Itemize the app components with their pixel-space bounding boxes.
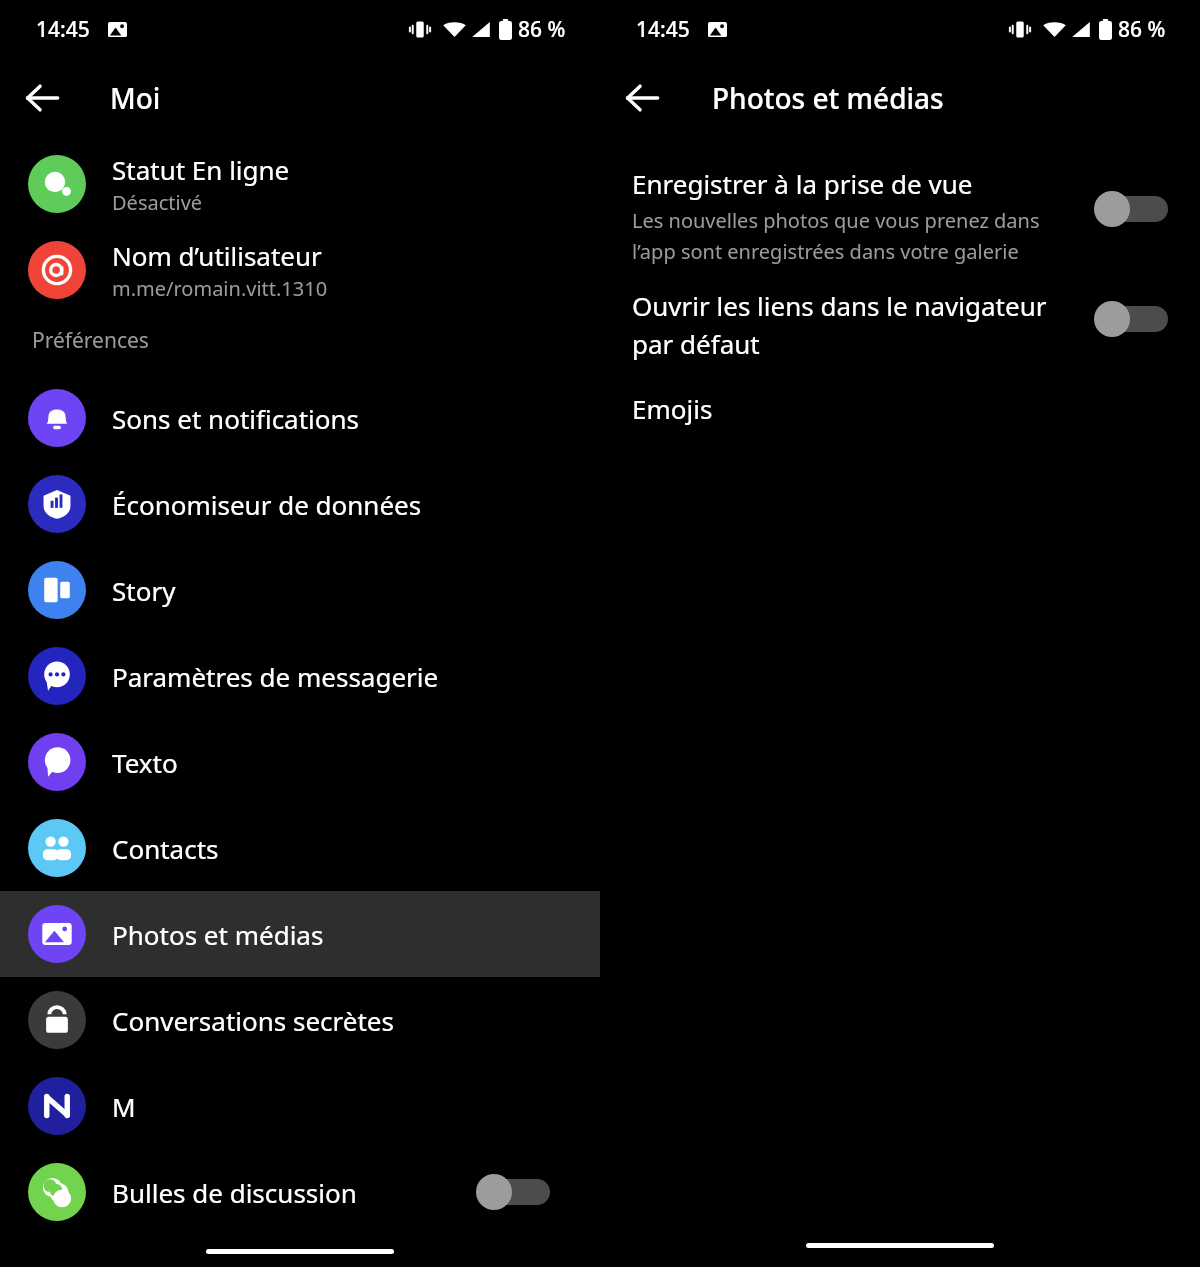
staticText: 86 %: [1118, 15, 1166, 44]
button[interactable]: M: [0, 1063, 600, 1149]
button[interactable]: Back: [612, 68, 672, 128]
staticText: 14:45: [636, 15, 690, 44]
button[interactable]: Ouvrir les liens dans le navigateur par …: [600, 288, 1200, 361]
button[interactable]: Bulles de discussion: [0, 1149, 600, 1235]
staticText: Paramètres de messagerie: [112, 659, 439, 694]
staticText: 14:45: [36, 15, 90, 44]
staticText: 86 %: [518, 15, 566, 44]
button[interactable]: Toggle: [476, 1171, 554, 1213]
button[interactable]: Story: [0, 547, 600, 633]
staticText: m.me/romain.vitt.1310: [112, 275, 328, 302]
button[interactable]: Toggle: [1094, 188, 1172, 230]
button[interactable]: Texto: [0, 719, 600, 805]
button[interactable]: Conversations secrètes: [0, 977, 600, 1063]
staticText: Story: [112, 573, 176, 608]
button[interactable]: Nom d’utilisateur: [0, 234, 600, 306]
button[interactable]: Emojis: [600, 383, 1200, 433]
staticText: Conversations secrètes: [112, 1003, 394, 1038]
button[interactable]: Photos et médias: [0, 891, 600, 977]
staticText: Texto: [112, 745, 178, 780]
staticText: Sons et notifications: [112, 401, 360, 436]
button[interactable]: Toggle: [1094, 298, 1172, 340]
button[interactable]: Sons et notifications: [0, 375, 600, 461]
staticText: Bulles de discussion: [112, 1175, 357, 1210]
staticText: Désactivé: [112, 189, 203, 216]
staticText: Préférences: [32, 326, 149, 355]
staticText: Nom d’utilisateur: [112, 238, 322, 273]
staticText: Les nouvelles photos que vous prenez dan…: [632, 207, 1040, 264]
staticText: Ouvrir les liens dans le navigateur par …: [632, 288, 1047, 361]
staticText: Contacts: [112, 831, 219, 866]
staticText: Emojis: [632, 391, 713, 426]
button[interactable]: Statut En ligne: [0, 148, 600, 220]
staticText: Enregistrer à la prise de vue: [632, 166, 973, 201]
staticText: Statut En ligne: [112, 152, 290, 187]
button[interactable]: Back: [12, 68, 72, 128]
button[interactable]: Paramètres de messagerie: [0, 633, 600, 719]
staticText: Économiseur de données: [112, 487, 422, 522]
staticText: M: [112, 1089, 136, 1124]
staticText: Photos et médias: [112, 917, 324, 952]
staticText: Photos et médias: [712, 79, 944, 117]
button[interactable]: Contacts: [0, 805, 600, 891]
button[interactable]: Enregistrer à la prise de vue: [600, 166, 1200, 264]
staticText: Moi: [110, 79, 161, 117]
button[interactable]: Économiseur de données: [0, 461, 600, 547]
